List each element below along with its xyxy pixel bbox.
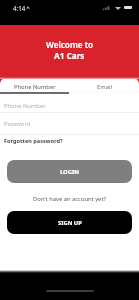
staticText: 4:14 bbox=[13, 4, 26, 12]
staticText: Phone Number bbox=[4, 102, 46, 110]
other: Location bbox=[26, 6, 30, 10]
other: Cellular signal bbox=[103, 6, 110, 10]
staticText: Email bbox=[97, 83, 112, 91]
staticText: Phone Number bbox=[14, 83, 56, 91]
staticText: LOGIN bbox=[60, 168, 79, 176]
button[interactable]: LOGIN bbox=[7, 160, 132, 183]
staticText: SIGN UP bbox=[58, 219, 82, 227]
staticText: Password bbox=[4, 120, 31, 128]
other: Battery bbox=[124, 6, 132, 9]
button[interactable]: Forgotten password? bbox=[4, 135, 63, 146]
staticText: Welcome to bbox=[46, 39, 94, 50]
staticText: A1 Cars bbox=[54, 50, 85, 61]
button[interactable]: SIGN UP bbox=[7, 211, 132, 234]
button[interactable]: Phone Number bbox=[4, 100, 139, 112]
staticText: Don't have an account yet? bbox=[33, 195, 106, 203]
staticText: Forgotten password? bbox=[4, 137, 63, 145]
other: Wi-Fi bbox=[115, 7, 121, 10]
button[interactable]: Email bbox=[69, 80, 139, 93]
button[interactable]: Phone Number bbox=[0, 80, 69, 93]
button[interactable]: Password bbox=[4, 118, 139, 130]
